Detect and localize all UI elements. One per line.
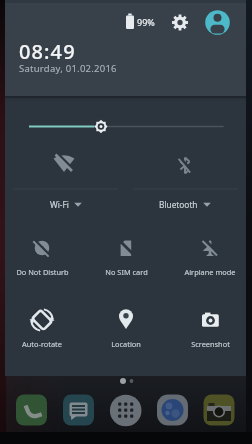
- staticText: Wi-Fi: [50, 199, 69, 210]
- button[interactable]: [167, 10, 191, 34]
- staticText: Do Not Disturb: [16, 267, 69, 277]
- staticText: 99%: [137, 16, 155, 28]
- button[interactable]: [110, 394, 142, 426]
- staticText: Screenshot: [191, 339, 230, 349]
- button[interactable]: [86, 302, 166, 364]
- staticText: 08:49: [19, 38, 76, 65]
- button[interactable]: [20, 112, 232, 140]
- staticText: Bluetooth: [159, 199, 198, 210]
- button[interactable]: [203, 394, 234, 425]
- staticText: Auto-rotate: [22, 339, 62, 349]
- button[interactable]: [5, 148, 125, 218]
- staticText: No SIM card: [105, 267, 148, 277]
- button[interactable]: [167, 302, 246, 364]
- staticText: Location: [111, 339, 141, 349]
- staticText: Airplane mode: [184, 267, 236, 277]
- button[interactable]: [203, 9, 231, 37]
- staticText: Saturday, 01.02.2016: [19, 62, 117, 75]
- button[interactable]: [157, 394, 188, 425]
- button[interactable]: [5, 302, 85, 364]
- button[interactable]: [86, 230, 166, 292]
- button[interactable]: [5, 230, 85, 292]
- button[interactable]: [167, 230, 246, 292]
- button[interactable]: [63, 394, 94, 425]
- button[interactable]: [16, 394, 47, 425]
- button[interactable]: [126, 148, 246, 218]
